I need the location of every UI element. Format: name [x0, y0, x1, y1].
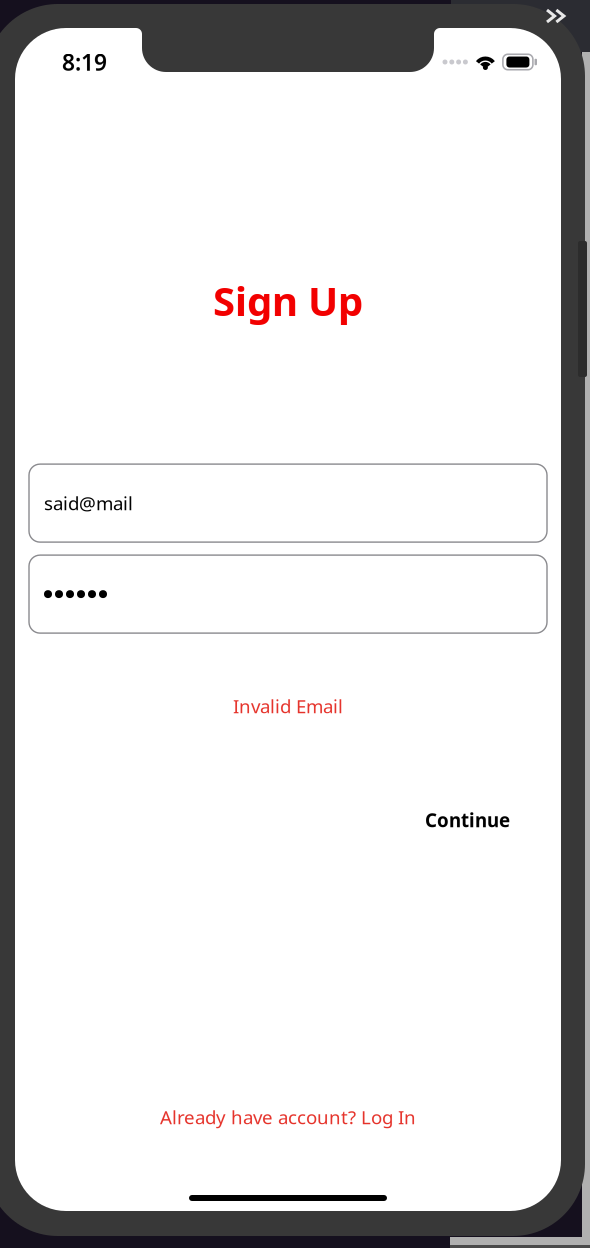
button[interactable]: Continue	[15, 809, 561, 831]
staticText: Already have account? Log In	[160, 1105, 416, 1129]
button[interactable]: Already have account? Log In	[15, 1106, 561, 1128]
staticText: Sign Up	[213, 274, 363, 327]
staticText: Continue	[425, 808, 510, 832]
staticText: said@mail	[44, 491, 133, 515]
button[interactable]: Invalid Email	[15, 695, 561, 717]
staticText: Invalid Email	[233, 694, 343, 718]
staticText: 8:19	[62, 47, 107, 77]
button[interactable]: said@mail	[29, 464, 547, 542]
button[interactable]	[29, 555, 547, 633]
